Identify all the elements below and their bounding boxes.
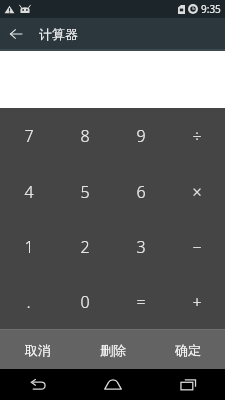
staticText: − [192, 236, 202, 258]
button[interactable]: 3 [113, 219, 169, 274]
staticText: 6 [136, 181, 146, 203]
staticText: ÷ [192, 125, 202, 147]
staticText: 9 [136, 125, 146, 147]
staticText: 0 [80, 291, 90, 313]
button[interactable]: 1 [0, 219, 57, 274]
staticText: 4 [24, 181, 34, 203]
staticText: . [26, 290, 31, 313]
button[interactable]: 4 [0, 164, 57, 219]
button[interactable]: Home [75, 369, 150, 400]
button[interactable]: Back [0, 369, 75, 400]
button[interactable]: 确定 [150, 330, 225, 369]
button[interactable]: 0 [57, 274, 113, 329]
staticText: 7 [24, 125, 34, 147]
staticText: 9:35 [201, 2, 221, 16]
button[interactable]: 9 [113, 108, 169, 164]
button[interactable]: 8 [57, 108, 113, 164]
button[interactable]: Recent apps [150, 369, 225, 400]
button[interactable]: Back [0, 18, 32, 49]
button[interactable]: × [169, 164, 225, 219]
button[interactable]: ÷ [169, 108, 225, 164]
staticText: 确定 [175, 342, 201, 358]
staticText: 3 [136, 236, 146, 258]
button[interactable]: = [113, 274, 169, 329]
button[interactable]: 取消 [0, 330, 75, 369]
staticText: 1 [24, 236, 34, 258]
staticText: 取消 [25, 342, 51, 358]
button[interactable]: 7 [0, 108, 57, 164]
staticText: + [192, 291, 202, 313]
button[interactable]: . [0, 274, 57, 329]
button[interactable]: 6 [113, 164, 169, 219]
staticText: 5 [80, 181, 90, 203]
staticText: = [136, 291, 146, 313]
button[interactable]: 2 [57, 219, 113, 274]
staticText: 8 [80, 125, 90, 147]
button[interactable]: − [169, 219, 225, 274]
staticText: × [192, 181, 202, 203]
button[interactable]: + [169, 274, 225, 329]
button[interactable]: 5 [57, 164, 113, 219]
staticText: 2 [80, 236, 90, 258]
button[interactable]: 删除 [75, 330, 150, 369]
staticText: 删除 [100, 342, 126, 358]
staticText: 计算器 [39, 26, 78, 42]
